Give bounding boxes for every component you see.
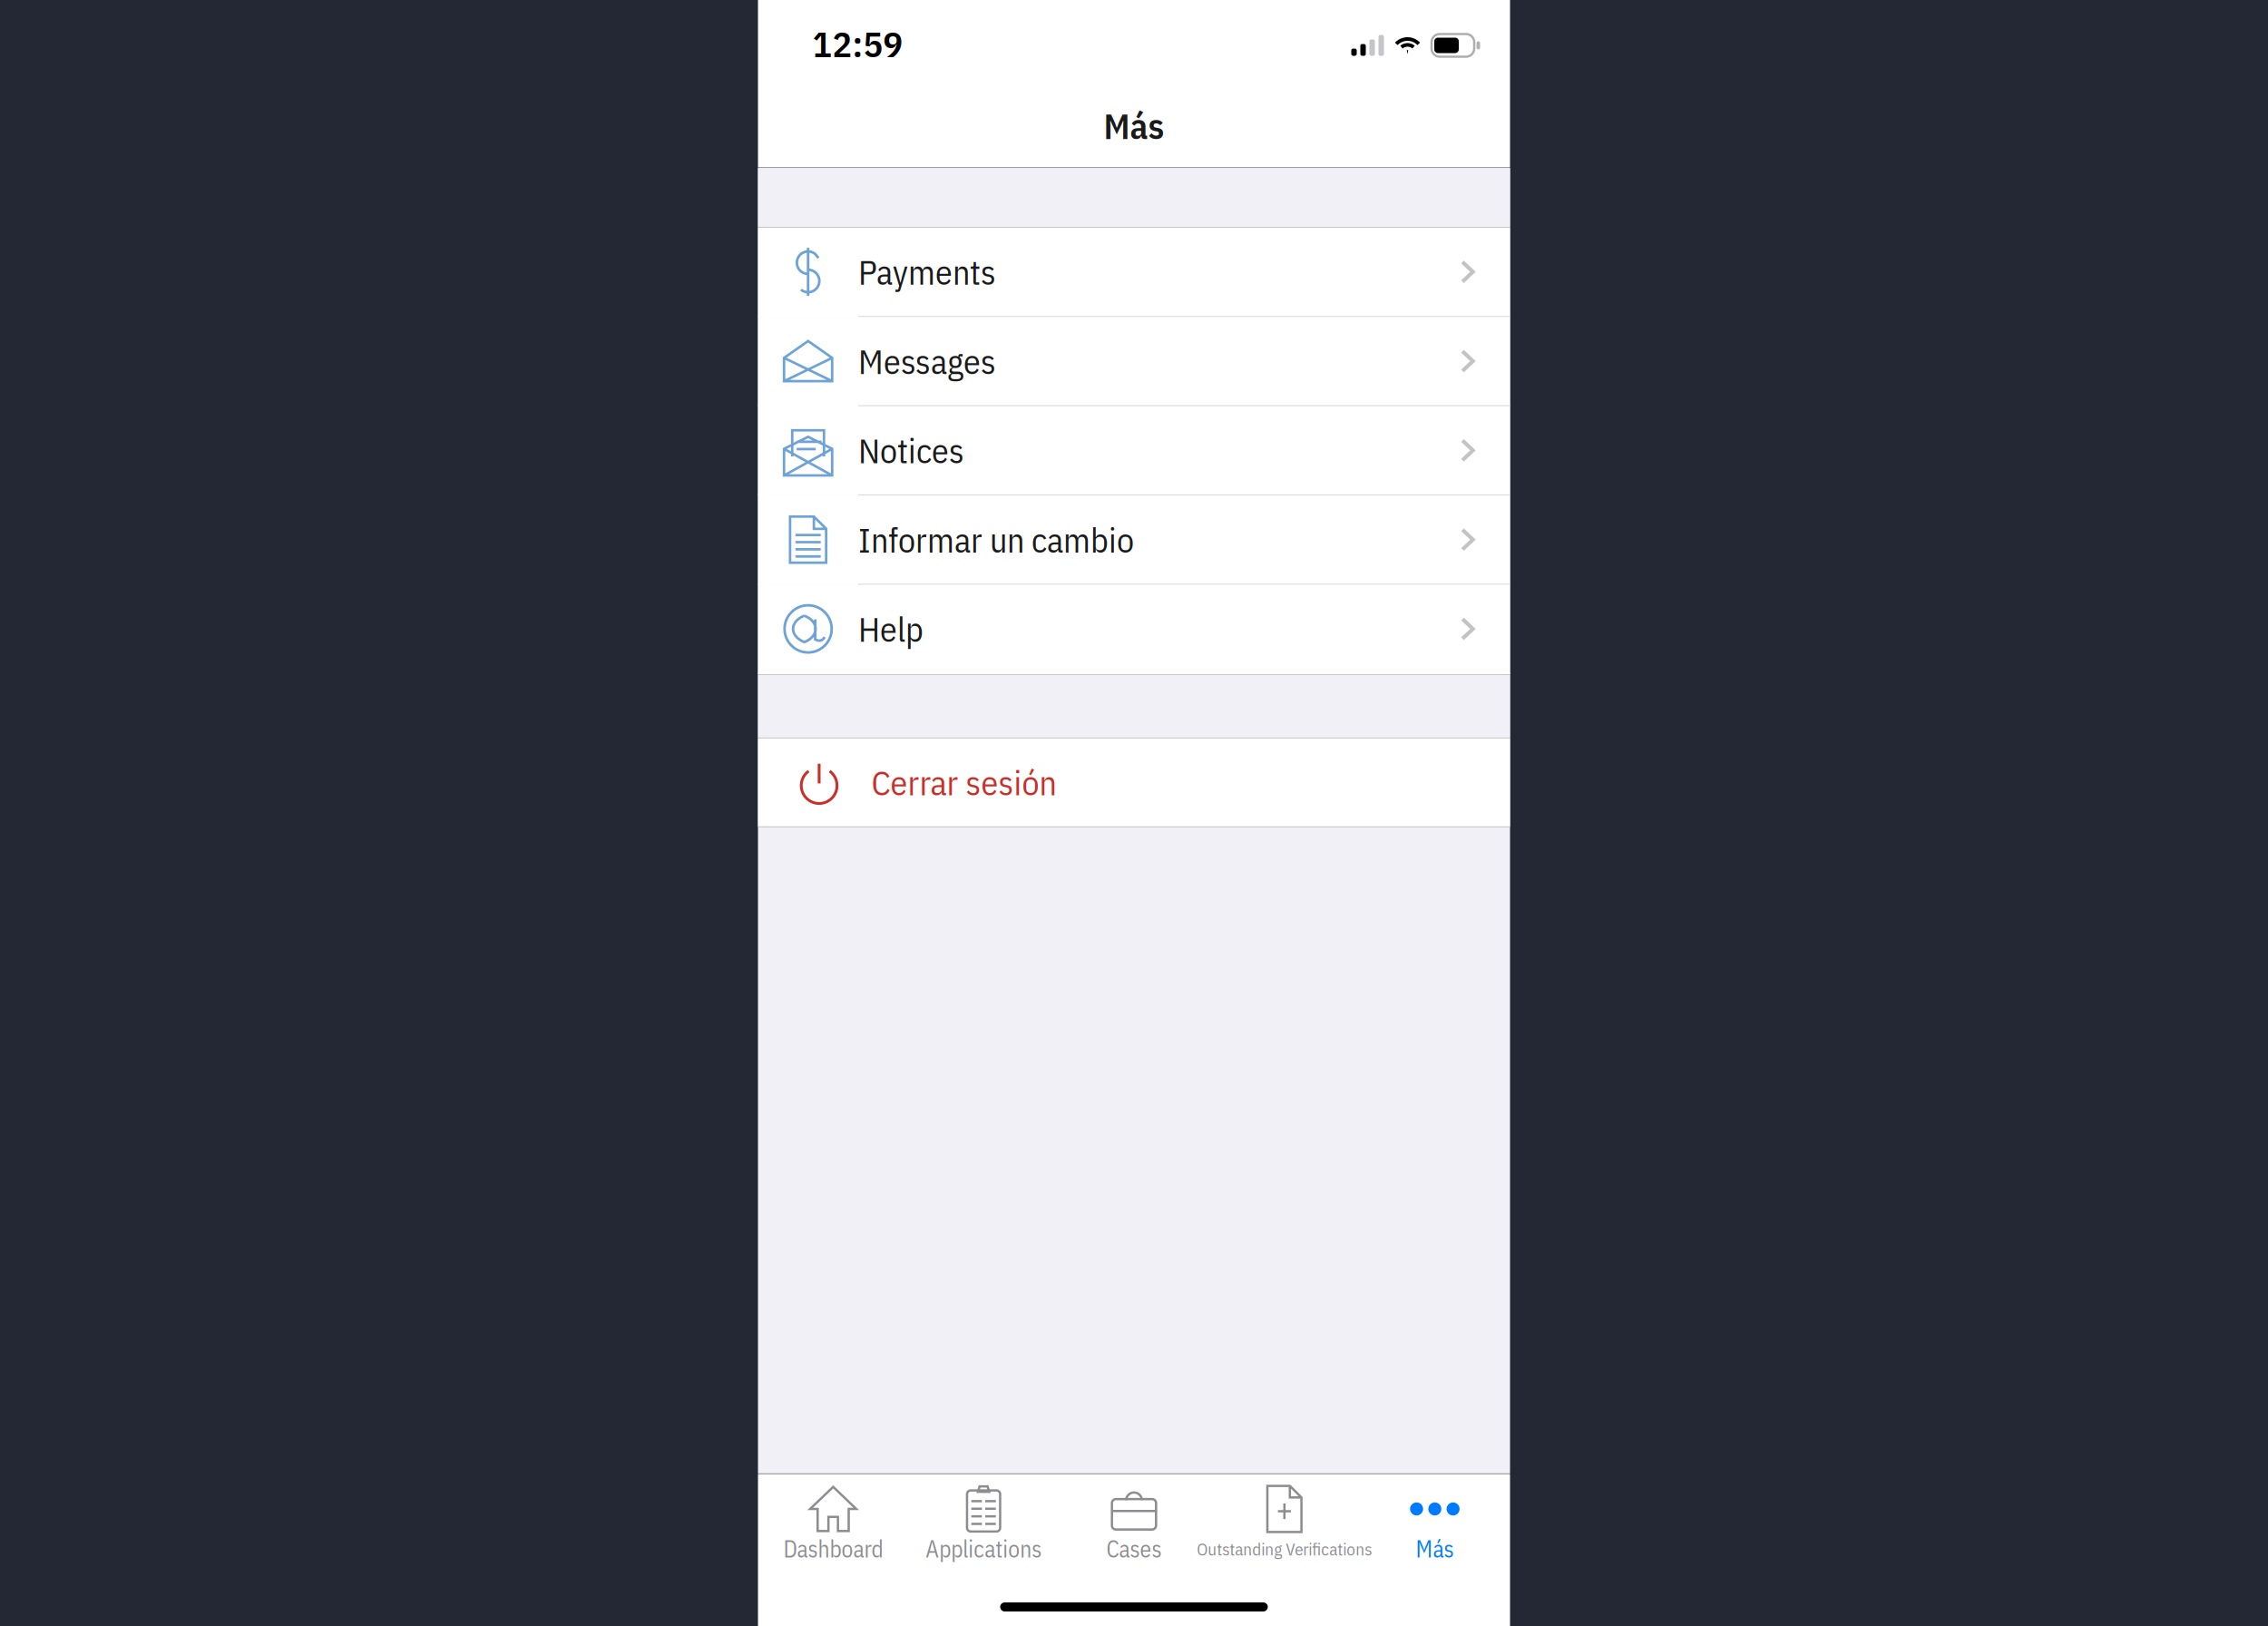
button[interactable]: Help	[758, 585, 1510, 674]
staticText: Más	[1104, 102, 1164, 149]
staticText: Notices	[858, 428, 964, 473]
staticText: Payments	[858, 250, 996, 294]
button[interactable]: Dashboard	[758, 1474, 908, 1574]
staticText: Cases	[1106, 1534, 1162, 1564]
button[interactable]: Payments	[758, 228, 1510, 317]
button[interactable]: Applications	[908, 1474, 1059, 1574]
button[interactable]: Cases	[1059, 1474, 1209, 1574]
staticText: Help	[858, 607, 924, 651]
button[interactable]: Informar un cambio	[758, 496, 1510, 585]
button[interactable]: Más	[1360, 1474, 1510, 1574]
staticText: Informar un cambio	[858, 517, 1134, 562]
staticText: Dashboard	[783, 1534, 883, 1564]
staticText: Messages	[858, 339, 996, 383]
staticText: Cerrar sesión	[871, 760, 1056, 805]
staticText: Applications	[926, 1534, 1042, 1564]
button[interactable]: Messages	[758, 317, 1510, 406]
staticText: Outstanding Verifications	[1197, 1538, 1372, 1560]
button[interactable]: Notices	[758, 406, 1510, 496]
staticText: Más	[1416, 1534, 1454, 1564]
button[interactable]: Outstanding Verifications	[1209, 1474, 1360, 1574]
staticText: 12:59	[812, 20, 903, 67]
button[interactable]: Cerrar sesión	[758, 739, 1510, 826]
